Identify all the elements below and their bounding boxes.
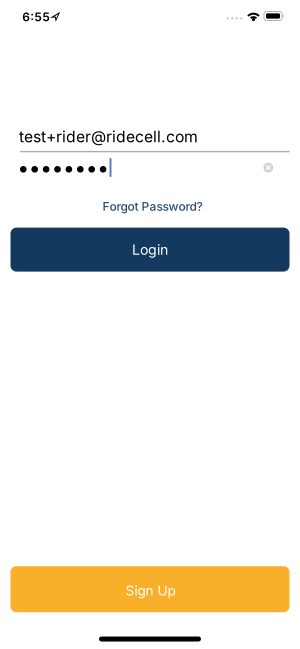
staticText: Forgot Password? [102,199,202,214]
staticText: Login [132,241,168,258]
staticText: Sign Up [125,582,175,599]
staticText: 6:55 [22,10,50,24]
staticText: test+rider@ridecell.com [19,127,198,146]
